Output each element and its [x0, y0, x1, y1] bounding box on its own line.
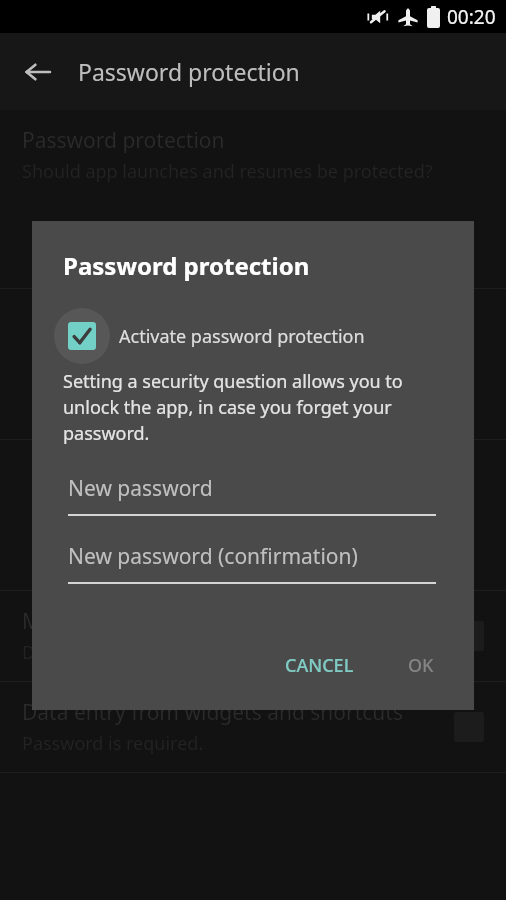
staticText: Should app launches and resumes be prote… [22, 159, 433, 184]
staticText: Setting a security question allows you t… [63, 369, 446, 446]
staticText: Activate password protection [119, 324, 365, 349]
staticText: New password (confirmation) [68, 542, 358, 571]
button[interactable]: My templates [0, 591, 506, 681]
staticText: My templates [22, 607, 156, 636]
button[interactable]: Back [14, 48, 62, 96]
staticText: Password protection [78, 56, 300, 87]
button[interactable]: Password protection [0, 110, 506, 200]
staticText: CANCEL [285, 653, 354, 678]
staticText: OK [408, 653, 434, 678]
staticText: Password protection [22, 126, 225, 155]
button[interactable]: Data entry from widgets and shortcuts [0, 682, 506, 772]
button[interactable]: CANCEL [271, 643, 368, 688]
staticText: Disabled [22, 640, 96, 665]
staticText: Password protection [63, 249, 310, 282]
staticText: Password is required. [22, 731, 204, 756]
staticText: 00:20 [447, 4, 496, 30]
button[interactable]: Activate password protection [54, 308, 450, 364]
button[interactable]: OK [394, 643, 448, 688]
staticText: New password [68, 474, 213, 503]
staticText: Data entry from widgets and shortcuts [22, 698, 403, 727]
